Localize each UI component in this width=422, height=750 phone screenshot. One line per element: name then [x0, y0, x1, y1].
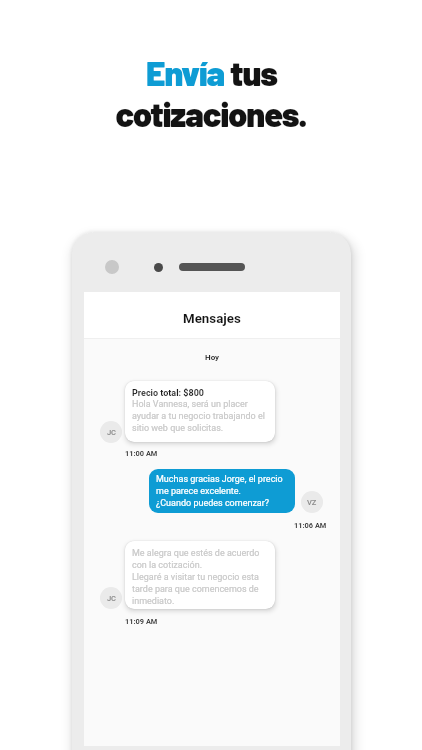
staticText: Precio total: $800 [132, 388, 204, 399]
staticText: 11:06 AM [294, 521, 327, 530]
button[interactable]: Contact JC [100, 421, 122, 443]
button[interactable]: Me alegra que estés de acuerdo con la co… [125, 541, 275, 609]
staticText: JC [107, 428, 116, 437]
staticText: Envía tus [146, 52, 277, 93]
staticText: Hoy [205, 353, 220, 362]
staticText: Muchas gracias Jorge, el precio me parec… [156, 474, 289, 508]
staticText: VZ [307, 498, 317, 507]
staticText: 11:09 AM [125, 617, 158, 626]
staticText: cotizaciones. [115, 93, 307, 134]
staticText: JC [107, 594, 116, 603]
button[interactable]: Muchas gracias Jorge, el precio me parec… [149, 469, 295, 513]
staticText: 11:00 AM [125, 449, 158, 458]
button[interactable]: Precio total: $800 [125, 381, 275, 442]
staticText: Hola Vannesa, será un placer ayudar a tu… [132, 399, 269, 433]
staticText: Mensajes [183, 311, 241, 327]
button[interactable]: Mensajes [84, 292, 340, 338]
button[interactable]: Contact VZ [301, 491, 323, 513]
button[interactable]: Contact JC [100, 587, 122, 609]
staticText: Me alegra que estés de acuerdo con la co… [132, 548, 269, 605]
